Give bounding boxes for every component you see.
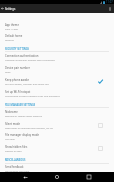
staticText: Settings: [5, 7, 16, 11]
button[interactable]: Set up Wi-Fi hotspot: [0, 87, 114, 99]
staticText: Keep phone awake: [5, 78, 29, 82]
button[interactable]: Send feedback: [0, 164, 114, 172]
staticText: 11:07: [106, 0, 113, 4]
staticText: Connection authentication: [5, 54, 39, 58]
staticText: Set up Wi-Fi hotspot: [5, 90, 31, 94]
staticText: App theme: [5, 23, 19, 27]
staticText: Internal: [5, 38, 14, 41]
button[interactable]: Navigate up: [0, 4, 5, 13]
staticText: Send feedback: [5, 165, 24, 169]
button[interactable]: Silent mode: [0, 119, 114, 131]
staticText: Silent mode: [5, 122, 21, 126]
button[interactable]: File manager display mode: [0, 131, 114, 142]
staticText: MISCELLANEOUS: [5, 158, 26, 161]
button[interactable]: More options: [105, 4, 114, 13]
staticText: File manager display mode: [5, 133, 40, 137]
staticText: Tell us what you think: [5, 169, 30, 172]
staticText: Validate connection request with connect…: [5, 58, 55, 61]
button[interactable]: Recent apps: [82, 172, 96, 182]
button[interactable]: Keep phone awake: [0, 75, 114, 87]
button[interactable]: Home: [50, 172, 64, 182]
button[interactable]: Show hidden files: [96, 144, 105, 153]
staticText: Default home: [5, 34, 23, 38]
staticText: Keep quiet on selected files request, fo…: [5, 126, 53, 129]
staticText: Nickname: [5, 110, 18, 114]
staticText: Set 30% awake, Transfer files faster but: [5, 82, 49, 85]
button[interactable]: Default home: [0, 32, 114, 43]
button[interactable]: App theme: [0, 21, 114, 32]
button[interactable]: Keep phone awake: [96, 77, 105, 86]
staticText: 0000: [5, 70, 11, 73]
staticText: Show hidden files: [5, 145, 28, 149]
staticText: Device pair number: [5, 66, 30, 70]
button[interactable]: Connection authentication: [0, 52, 114, 63]
staticText: Dark / Light: [5, 27, 19, 30]
button[interactable]: Device pair number: [0, 63, 114, 75]
button[interactable]: Silent mode: [96, 121, 105, 130]
button[interactable]: Nickname: [0, 108, 114, 119]
staticText: Display all files: [5, 149, 22, 152]
button[interactable]: Show hidden files: [0, 142, 114, 154]
staticText: List view: [5, 137, 15, 140]
button[interactable]: Back: [18, 172, 32, 182]
staticText: FILE MANAGER SETTINGS: [5, 103, 36, 106]
staticText: Rename or delete saved network: [5, 114, 42, 117]
staticText: Customized hotspot network SSID and pass…: [5, 94, 60, 97]
staticText: SECURITY SETTINGS: [5, 47, 29, 50]
